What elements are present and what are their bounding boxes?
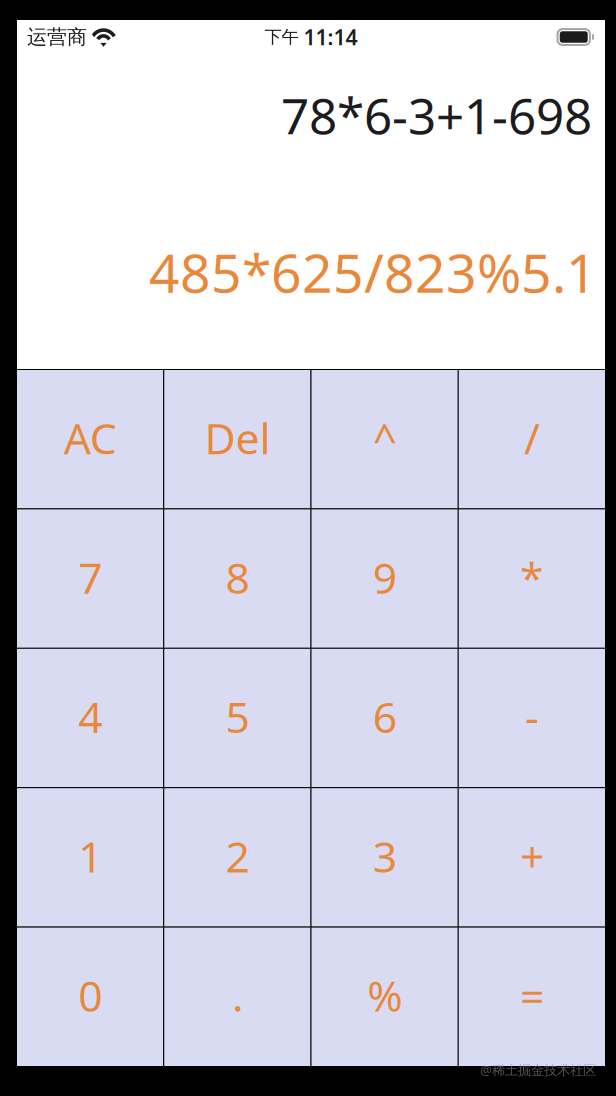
button[interactable]: Multiply: [459, 509, 605, 648]
button[interactable]: 0: [17, 928, 163, 1066]
staticText: =: [520, 967, 544, 1024]
staticText: 1: [78, 828, 102, 884]
button[interactable]: Power: [311, 370, 458, 508]
staticText: 78*6-3+1-698: [281, 82, 592, 148]
staticText: 5: [225, 688, 249, 745]
staticText: 下午: [264, 26, 298, 48]
staticText: ^: [373, 409, 397, 466]
button[interactable]: 9: [311, 509, 458, 648]
button[interactable]: 3: [311, 788, 458, 927]
staticText: 11:14: [303, 23, 357, 51]
staticText: %: [367, 967, 402, 1024]
button[interactable]: Equals: [459, 928, 605, 1066]
button[interactable]: 7: [17, 509, 163, 648]
staticText: 3: [373, 828, 397, 884]
staticText: @稀土掘金技术社区: [480, 1061, 596, 1079]
button[interactable]: Divide: [459, 370, 605, 508]
staticText: -: [525, 688, 539, 745]
staticText: /: [524, 409, 540, 466]
button[interactable]: 4: [17, 649, 163, 787]
button[interactable]: Plus: [459, 788, 605, 927]
button[interactable]: 1: [17, 788, 163, 927]
staticText: 0: [78, 967, 102, 1024]
button[interactable]: 6: [311, 649, 458, 787]
staticText: 9: [373, 549, 397, 605]
staticText: 4: [78, 688, 102, 745]
button[interactable]: Minus: [459, 649, 605, 787]
staticText: 运营商: [27, 25, 87, 49]
button[interactable]: 8: [164, 509, 310, 648]
staticText: .: [232, 967, 243, 1024]
staticText: 7: [78, 549, 102, 605]
staticText: 8: [225, 549, 249, 605]
staticText: +: [520, 828, 544, 884]
staticText: Del: [204, 409, 270, 466]
staticText: *: [520, 549, 544, 605]
staticText: 6: [373, 688, 397, 745]
button[interactable]: All clear: [17, 370, 163, 508]
staticText: 485*625/823%5.1: [149, 237, 597, 307]
button[interactable]: 5: [164, 649, 310, 787]
button[interactable]: Delete: [164, 370, 310, 508]
button[interactable]: 2: [164, 788, 310, 927]
staticText: 2: [225, 828, 249, 884]
staticText: AC: [64, 409, 117, 466]
button[interactable]: Percent: [311, 928, 458, 1066]
button[interactable]: Decimal point: [164, 928, 310, 1066]
